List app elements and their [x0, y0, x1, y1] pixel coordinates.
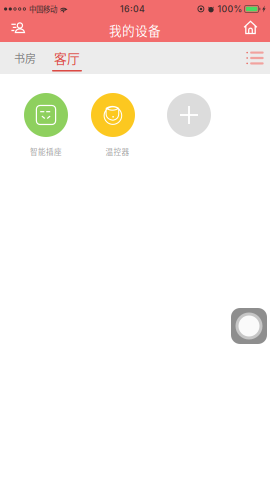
staticText: 中国移动	[29, 4, 57, 14]
button[interactable]: Profile	[5, 18, 31, 42]
staticText: 智能插座	[30, 146, 62, 157]
staticText: 书房	[14, 50, 36, 66]
button[interactable]: 客厅	[52, 42, 82, 74]
staticText: 100%	[217, 4, 242, 14]
button[interactable]: Home	[237, 18, 263, 42]
button[interactable]: AssistiveTouch	[231, 308, 267, 344]
button[interactable]	[167, 98, 211, 160]
staticText: 16:04	[120, 4, 145, 14]
staticText: 客厅	[54, 48, 80, 67]
button[interactable]: List view	[246, 42, 264, 74]
button[interactable]: 智能插座	[24, 98, 68, 160]
staticText: 温控器	[106, 146, 130, 157]
button[interactable]: 温控器	[91, 98, 135, 160]
staticText: 我的设备	[109, 21, 161, 39]
button[interactable]: 书房	[8, 42, 42, 74]
